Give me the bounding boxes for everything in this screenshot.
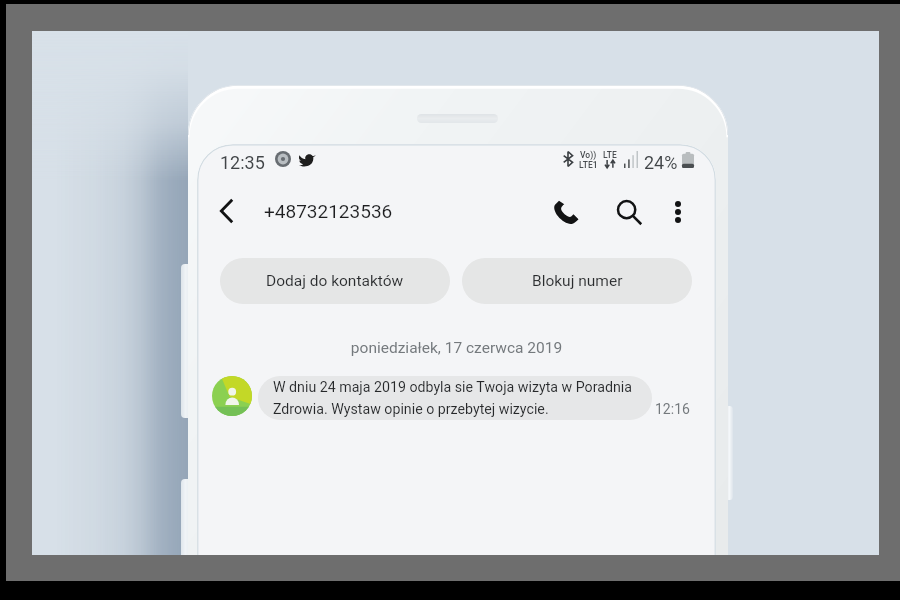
staticText: LTE1 <box>579 160 598 170</box>
staticText: 24% <box>644 152 678 173</box>
staticText: W dniu 24 maja 2019 odbyla sie Twoja wiz… <box>273 379 632 417</box>
button[interactable]: W dniu 24 maja 2019 odbyla sie Twoja wiz… <box>258 376 652 420</box>
staticText: 12:35 <box>220 152 265 173</box>
staticText: Blokuj numer <box>532 272 623 290</box>
button[interactable]: Back <box>205 187 247 235</box>
staticText: +48732123536 <box>264 200 393 222</box>
button[interactable]: +48732123536 <box>264 190 393 232</box>
button[interactable]: Call <box>544 189 588 235</box>
button[interactable]: More options <box>658 189 698 235</box>
staticText: 12:16 <box>655 401 690 417</box>
staticText: Dodaj do kontaktów <box>266 272 404 290</box>
staticText: poniedziałek, 17 czerwca 2019 <box>197 339 716 357</box>
button[interactable]: Dodaj do kontaktów <box>220 258 450 304</box>
button[interactable]: Blokuj numer <box>462 258 692 304</box>
staticText: LTE <box>603 150 617 160</box>
button[interactable]: Search <box>607 189 651 235</box>
staticText: Vo)) <box>580 150 597 160</box>
